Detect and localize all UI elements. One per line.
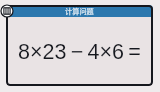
staticText: 计算问题 — [65, 6, 94, 16]
staticText: 8×23 − 4×6 = — [18, 40, 141, 64]
button[interactable]: 计算问题 — [6, 5, 153, 17]
button[interactable]: App logo — [0, 4, 14, 18]
